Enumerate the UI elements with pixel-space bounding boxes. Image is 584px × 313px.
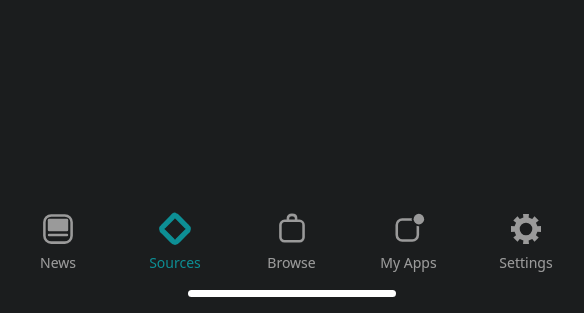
staticText: My Apps [380,253,437,272]
button[interactable]: Settings [467,200,584,280]
button[interactable]: My Apps [350,200,467,280]
button[interactable]: Browse [233,200,350,280]
button[interactable]: Sources [116,200,233,280]
staticText: News [40,253,76,272]
staticText: Browse [267,253,316,272]
staticText: Sources [149,253,201,272]
staticText: Settings [499,253,553,272]
button[interactable]: News [0,200,116,280]
